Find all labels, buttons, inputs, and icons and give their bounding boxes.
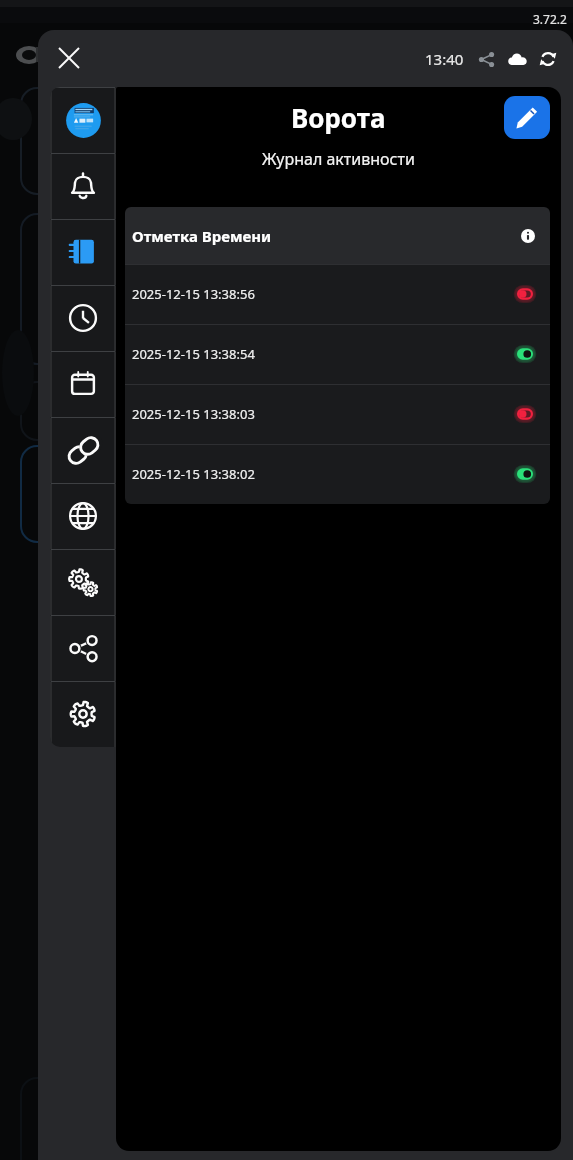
button[interactable]: History: [50, 285, 116, 351]
button[interactable]: Edit: [504, 96, 550, 139]
button[interactable]: Share: [50, 615, 116, 681]
button[interactable]: 2025-12-15 13:38:56: [125, 264, 550, 324]
button[interactable]: Отметка Времени: [132, 207, 539, 264]
button[interactable]: Network: [50, 483, 116, 549]
staticText: 13:40: [425, 49, 464, 69]
button[interactable]: 2025-12-15 13:38:02: [125, 444, 550, 504]
button[interactable]: Account: [50, 87, 116, 153]
button[interactable]: Automation: [50, 549, 116, 615]
button[interactable]: Notifications: [50, 153, 116, 219]
button[interactable]: Schedule: [50, 351, 116, 417]
button[interactable]: Share: [473, 46, 499, 72]
button[interactable]: 2025-12-15 13:38:54: [125, 324, 550, 384]
button[interactable]: Info: [517, 225, 539, 247]
staticText: Ворота: [291, 100, 386, 135]
staticText: 2025-12-15 13:38:56: [132, 285, 255, 303]
button[interactable]: Refresh: [535, 46, 561, 72]
button[interactable]: 2025-12-15 13:38:03: [125, 384, 550, 444]
button[interactable]: Journal: [50, 219, 116, 285]
button[interactable]: Cloud sync: [504, 46, 530, 72]
staticText: 3.72.2: [533, 11, 567, 27]
button[interactable]: Links: [50, 417, 116, 483]
button[interactable]: Settings: [50, 681, 116, 747]
staticText: 2025-12-15 13:38:03: [132, 405, 255, 423]
staticText: 2025-12-15 13:38:02: [132, 465, 255, 483]
staticText: 2025-12-15 13:38:54: [132, 345, 255, 363]
staticText: Отметка Времени: [132, 226, 272, 246]
staticText: Журнал активности: [262, 148, 415, 170]
button[interactable]: Close: [48, 37, 90, 79]
